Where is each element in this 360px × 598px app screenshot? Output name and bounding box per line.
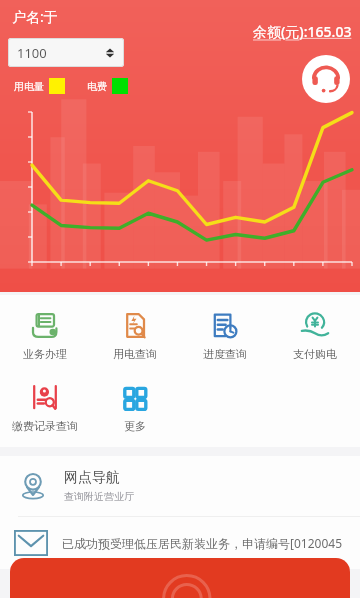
button[interactable]: 业务办理 <box>0 307 90 365</box>
button[interactable]: 更多 <box>90 379 180 437</box>
button[interactable]: 网点导航 <box>0 456 360 516</box>
button[interactable]: 已成功预受理低压居民新装业务，申请编号[0120045 <box>0 517 360 569</box>
staticText: 更多 <box>124 419 146 433</box>
staticText: 业务办理 <box>23 347 67 361</box>
staticText: 1100 <box>17 44 47 62</box>
staticText: 支付购电 <box>293 347 337 361</box>
staticText: 查询附近营业厅 <box>64 490 134 503</box>
button[interactable]: 用电查询 <box>90 307 180 365</box>
staticText: 用电查询 <box>113 347 157 361</box>
button[interactable]: 缴费记录查询 <box>0 379 90 437</box>
staticText: 户名:于 <box>12 7 58 26</box>
button[interactable]: 1100 <box>8 38 124 67</box>
staticText: 已成功预受理低压居民新装业务，申请编号[0120045 <box>62 535 342 551</box>
button[interactable]: 进度查询 <box>180 307 270 365</box>
staticText: 缴费记录查询 <box>12 419 78 433</box>
staticText: 电费 <box>87 80 107 93</box>
staticText: 网点导航 <box>64 469 120 487</box>
staticText: 用电量 <box>14 80 44 93</box>
button[interactable]: 余额(元):165.03 <box>253 22 352 41</box>
button[interactable]: 客服热线 <box>302 55 350 103</box>
staticText: 进度查询 <box>203 347 247 361</box>
button[interactable] <box>10 558 350 598</box>
button[interactable]: 支付购电 <box>270 307 360 365</box>
